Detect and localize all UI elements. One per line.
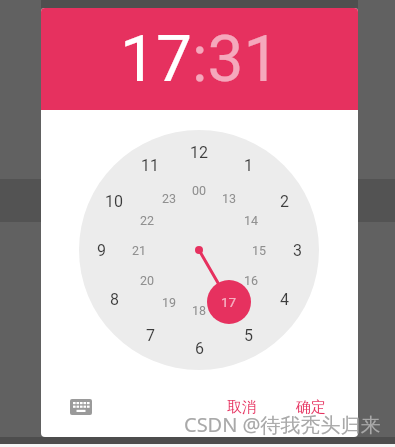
staticText: 3 bbox=[293, 241, 302, 260]
staticText: 15 bbox=[252, 243, 267, 258]
staticText: 22 bbox=[140, 213, 155, 228]
staticText: CSDN @待我秃头归来 bbox=[184, 411, 381, 438]
staticText: 20 bbox=[140, 273, 155, 288]
staticText: 23 bbox=[162, 191, 177, 206]
staticText: 13 bbox=[222, 191, 237, 206]
staticText: 21 bbox=[132, 243, 147, 258]
staticText: 6 bbox=[195, 339, 204, 358]
staticText: 5 bbox=[244, 326, 253, 345]
staticText: 12 bbox=[190, 143, 208, 162]
staticText: 19 bbox=[162, 295, 177, 310]
staticText: 11 bbox=[141, 156, 159, 175]
staticText: 4 bbox=[280, 290, 289, 309]
staticText: 取消 bbox=[227, 398, 257, 417]
staticText: 17:31 bbox=[120, 22, 280, 97]
staticText: 2 bbox=[280, 192, 289, 211]
staticText: 9 bbox=[97, 241, 106, 260]
staticText: 16 bbox=[244, 273, 259, 288]
staticText: 00 bbox=[192, 183, 207, 198]
staticText: 1 bbox=[244, 156, 253, 175]
staticText: 7 bbox=[146, 326, 155, 345]
staticText: 17 bbox=[221, 294, 237, 310]
staticText: 10 bbox=[105, 192, 123, 211]
button[interactable]: 确定 bbox=[288, 395, 334, 419]
staticText: 确定 bbox=[296, 398, 326, 417]
staticText: 18 bbox=[192, 303, 207, 318]
button[interactable]: 取消 bbox=[219, 395, 265, 419]
staticText: 14 bbox=[244, 213, 259, 228]
staticText: 8 bbox=[110, 290, 119, 309]
button[interactable] bbox=[66, 395, 96, 419]
